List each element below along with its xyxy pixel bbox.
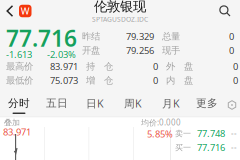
staticText: 0 <box>153 60 158 73</box>
staticText: 总量 <box>162 31 180 42</box>
staticText: 增 仓 <box>86 75 113 86</box>
staticText: 均价:0.000 <box>141 117 181 128</box>
staticText: -1.613 <box>6 48 32 61</box>
staticText: 0 <box>229 30 234 43</box>
staticText: 最高价 <box>6 61 33 72</box>
staticText: 日K <box>86 96 104 110</box>
button[interactable]: 周K <box>114 94 152 116</box>
staticText: 持 仓 <box>86 61 113 72</box>
staticText: 83.971 <box>50 60 78 73</box>
staticText: -2.03% <box>47 48 76 61</box>
button[interactable]: Back <box>0 0 46 22</box>
staticText: 5.85% <box>147 128 173 140</box>
staticText: 75.073 <box>50 74 78 87</box>
staticText: 内 盘 <box>166 75 193 86</box>
staticText: 77.748 <box>197 127 225 140</box>
staticText: 叠加 <box>4 118 20 127</box>
staticText: 外 盘 <box>166 61 193 72</box>
staticText: 开盘 <box>82 45 100 56</box>
staticText: -- <box>231 142 237 153</box>
staticText: -- <box>231 128 237 139</box>
staticText: 0 <box>153 74 158 87</box>
staticText: 周K <box>124 96 142 110</box>
staticText: 卖一 <box>175 129 191 138</box>
staticText: 0 <box>233 60 238 73</box>
button[interactable]: 五日 <box>38 94 76 116</box>
button[interactable]: More options <box>224 94 240 116</box>
button[interactable]: 更多 <box>190 94 224 116</box>
button[interactable]: Search <box>194 0 240 22</box>
staticText: 分时 <box>8 97 30 110</box>
staticText: 77.716 <box>6 23 77 53</box>
staticText: 0 <box>229 44 234 57</box>
staticText: 79.256 <box>126 44 154 57</box>
button[interactable]: 月K <box>152 94 190 116</box>
staticText: W <box>21 5 30 17</box>
staticText: 83.971 <box>3 126 31 138</box>
staticText: 昨结 <box>82 31 100 42</box>
button[interactable]: 叠加 <box>4 118 26 127</box>
button[interactable]: 分时 <box>0 94 38 116</box>
button[interactable]: 日K <box>76 94 114 116</box>
staticText: 五日 <box>46 97 68 110</box>
staticText: 月K <box>162 96 180 110</box>
staticText: 79.329 <box>126 30 154 43</box>
staticText: 77.716 <box>197 141 225 154</box>
staticText: 买一 <box>175 143 191 152</box>
staticText: 更多 <box>196 97 218 110</box>
staticText: 伦敦银现 <box>94 0 146 15</box>
staticText: 现手 <box>162 45 180 56</box>
staticText: 0 <box>233 74 238 87</box>
staticText: 最低价 <box>6 75 33 86</box>
staticText: SPTAGUSDOZ.IDC <box>92 15 148 24</box>
